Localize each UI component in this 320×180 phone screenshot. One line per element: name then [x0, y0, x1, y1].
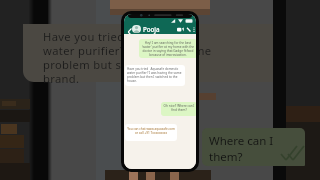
- button[interactable]: Back: [126, 27, 131, 32]
- button[interactable]: [132, 25, 141, 33]
- button[interactable]: Oh nice!! Where can I find them?: [161, 102, 196, 116]
- button[interactable]: Have you tried Aquasafe domestic water p…: [125, 65, 185, 86]
- staticText: Have you tried Aquasafe domestic water p…: [127, 67, 183, 83]
- other: Read receipt: [280, 145, 300, 157]
- button[interactable]: Where can I them?: [202, 128, 305, 166]
- staticText: Have you tried the plastic water purifie…: [43, 29, 212, 86]
- staticText: You can chat www.aquasafe.com or call +9…: [127, 127, 175, 135]
- button[interactable]: Call and menu: [177, 26, 193, 32]
- staticText: Hey! I am searching for the best 'water'…: [141, 41, 195, 56]
- staticText: Where can I them?: [209, 133, 274, 164]
- button[interactable]: You can chat www.aquasafe.com or call +9…: [125, 124, 177, 141]
- button[interactable]: Hey! I am searching for the best 'water'…: [139, 39, 196, 58]
- staticText: Oh nice!! Where can I find them?: [163, 104, 195, 112]
- button[interactable]: Pooja: [143, 25, 160, 33]
